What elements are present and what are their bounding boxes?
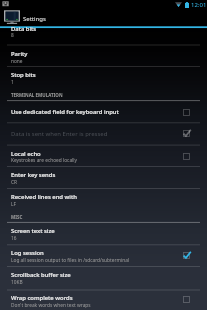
staticText: Wrap complete words [11, 294, 73, 302]
staticText: Log all session output to files in /sdca… [11, 257, 130, 264]
staticText: Received lines end with [11, 193, 77, 201]
staticText: Local echo [11, 150, 41, 158]
staticText: 10KB [11, 279, 23, 286]
staticText: Parity [11, 50, 28, 58]
staticText: Keystrokes are echoed locally [11, 157, 78, 164]
button[interactable]: Data bits [0, 28, 207, 44]
button[interactable]: Stop bits [0, 67, 207, 88]
staticText: Don't break words when text wraps [11, 302, 91, 309]
other: Wi-Fi [175, 2, 182, 7]
staticText: Log session [11, 249, 44, 257]
staticText: 8 [11, 32, 14, 39]
staticText: TERMINAL EMULATION [11, 92, 63, 98]
staticText: MISC [11, 214, 23, 220]
button[interactable]: Log session [0, 245, 207, 266]
button[interactable]: Local echo [0, 146, 207, 166]
other: Battery [185, 2, 189, 8]
staticText: none [11, 58, 23, 65]
staticText: Settings [23, 15, 46, 23]
other: App icon [4, 9, 20, 24]
button[interactable]: Screen text size [0, 223, 207, 244]
staticText: LF [11, 201, 17, 208]
button[interactable]: Received lines end with [0, 189, 207, 210]
button[interactable]: App icon [0, 9, 207, 26]
staticText: Scrollback buffer size [11, 271, 71, 279]
button[interactable]: Parity [0, 46, 207, 67]
button[interactable]: Use dedicated field for keyboard input [0, 102, 207, 123]
staticText: 1 [11, 79, 14, 86]
staticText: Use dedicated field for keyboard input [11, 108, 119, 116]
button[interactable]: Enter key sends [0, 167, 207, 188]
staticText: CR [11, 179, 18, 186]
staticText: Enter key sends [11, 171, 56, 179]
staticText: 16 [11, 235, 17, 242]
staticText: Screen text size [11, 227, 55, 235]
staticText: Stop bits [11, 71, 36, 79]
staticText: Data bits [11, 25, 37, 33]
button[interactable]: Wrap complete words [0, 291, 207, 310]
staticText: 12:01 [191, 1, 207, 9]
button[interactable]: Data is sent when Enter is pressed [0, 123, 207, 144]
button[interactable]: Scrollback buffer size [0, 267, 207, 290]
staticText: Data is sent when Enter is pressed [11, 130, 108, 138]
